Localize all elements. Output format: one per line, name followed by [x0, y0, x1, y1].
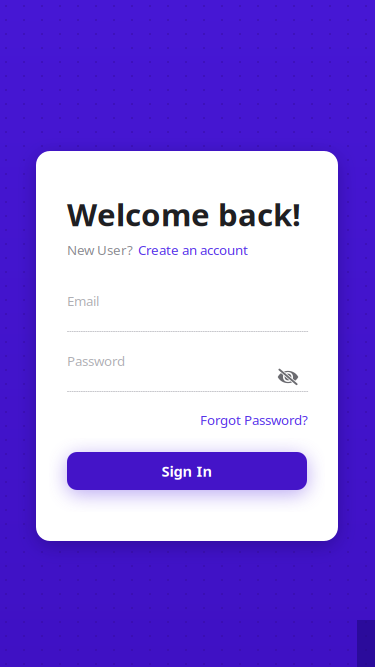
button[interactable]: Sign In [67, 452, 307, 490]
staticText: Email [67, 292, 99, 310]
staticText: Welcome back! [67, 193, 301, 235]
button[interactable]: Show password [277, 370, 299, 384]
button[interactable]: Create an account [138, 241, 248, 259]
staticText: Create an account [138, 241, 248, 259]
staticText: New User? [67, 241, 133, 259]
staticText: Forgot Password? [200, 411, 308, 429]
staticText: Password [67, 352, 125, 370]
staticText: Sign In [161, 461, 212, 481]
button[interactable]: Forgot Password? [200, 411, 308, 429]
